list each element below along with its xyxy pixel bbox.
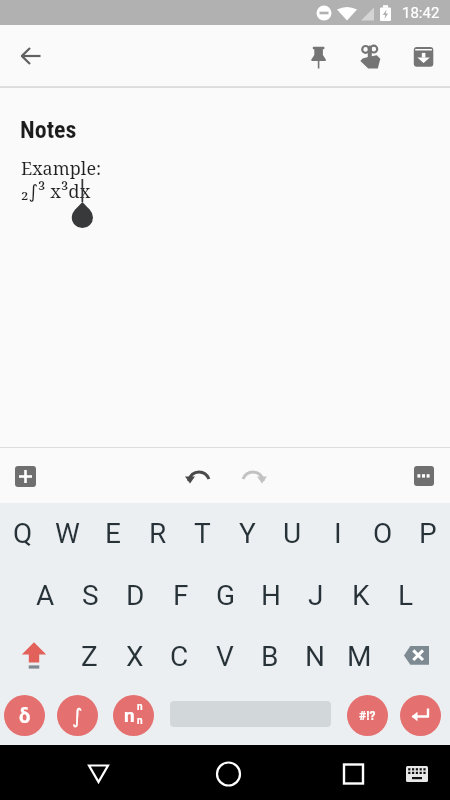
- staticText: 18:42: [402, 4, 440, 22]
- staticText: N: [305, 640, 325, 673]
- button[interactable]: X: [112, 631, 157, 681]
- button[interactable]: J: [293, 570, 338, 620]
- staticText: R: [149, 517, 167, 550]
- staticText: ₂∫³ x³dx: [21, 178, 91, 203]
- button[interactable]: L: [383, 570, 428, 620]
- staticText: T: [194, 517, 211, 550]
- button[interactable]: [11, 631, 56, 681]
- staticText: #!?: [359, 709, 376, 723]
- button[interactable]: M: [337, 631, 382, 681]
- button[interactable]: ∫: [57, 695, 98, 736]
- staticText: Y: [239, 517, 256, 550]
- staticText: H: [261, 579, 281, 612]
- button[interactable]: [238, 461, 268, 491]
- staticText: D: [126, 579, 145, 612]
- staticText: W: [55, 517, 80, 550]
- staticText: n: [124, 704, 135, 726]
- button[interactable]: E: [90, 508, 135, 558]
- staticText: L: [398, 579, 414, 612]
- staticText: S: [82, 579, 99, 612]
- button[interactable]: H: [248, 570, 293, 620]
- staticText: X: [126, 640, 144, 673]
- staticText: M: [347, 640, 372, 673]
- button[interactable]: [398, 631, 443, 681]
- button[interactable]: F: [158, 570, 203, 620]
- button[interactable]: A: [23, 570, 68, 620]
- staticText: G: [216, 579, 236, 612]
- staticText: n: [137, 715, 143, 727]
- button[interactable]: U: [270, 508, 315, 558]
- button[interactable]: W: [45, 508, 90, 558]
- button[interactable]: I: [315, 508, 360, 558]
- button[interactable]: #!?: [347, 695, 388, 736]
- button[interactable]: R: [135, 508, 180, 558]
- button[interactable]: [15, 466, 36, 487]
- button[interactable]: Y: [225, 508, 270, 558]
- button[interactable]: Q: [0, 508, 45, 558]
- button[interactable]: Z: [67, 631, 112, 681]
- staticText: P: [419, 517, 437, 550]
- staticText: V: [216, 640, 234, 673]
- staticText: B: [261, 640, 279, 673]
- button[interactable]: [345, 35, 389, 79]
- staticText: ∫: [72, 704, 83, 727]
- button[interactable]: [414, 466, 434, 486]
- staticText: I: [334, 517, 342, 550]
- staticText: J: [308, 579, 324, 612]
- staticText: δ: [19, 704, 31, 727]
- button[interactable]: V: [202, 631, 247, 681]
- staticText: O: [373, 517, 393, 550]
- staticText: F: [173, 579, 189, 612]
- button[interactable]: [402, 35, 446, 79]
- button[interactable]: N: [292, 631, 337, 681]
- button[interactable]: S: [68, 570, 113, 620]
- button[interactable]: [297, 35, 341, 79]
- staticText: Example:: [21, 156, 102, 181]
- staticText: U: [283, 517, 302, 550]
- button[interactable]: B: [247, 631, 292, 681]
- staticText: Z: [81, 640, 98, 673]
- staticText: E: [105, 517, 121, 550]
- button[interactable]: [400, 695, 441, 736]
- button[interactable]: [395, 751, 440, 796]
- button[interactable]: P: [405, 508, 450, 558]
- staticText: A: [36, 579, 55, 612]
- button[interactable]: δ: [4, 695, 45, 736]
- button[interactable]: O: [360, 508, 405, 558]
- button[interactable]: [206, 751, 251, 796]
- button[interactable]: n: [113, 695, 154, 736]
- button[interactable]: [9, 34, 53, 78]
- button[interactable]: [184, 461, 214, 491]
- button[interactable]: [76, 751, 121, 796]
- button[interactable]: C: [157, 631, 202, 681]
- button[interactable]: D: [113, 570, 158, 620]
- staticText: K: [352, 579, 370, 612]
- button[interactable]: K: [338, 570, 383, 620]
- button[interactable]: [331, 751, 376, 796]
- staticText: n: [137, 701, 143, 713]
- staticText: Notes: [20, 116, 77, 144]
- button[interactable]: G: [203, 570, 248, 620]
- button[interactable]: T: [180, 508, 225, 558]
- staticText: C: [170, 640, 189, 673]
- staticText: Q: [13, 517, 33, 550]
